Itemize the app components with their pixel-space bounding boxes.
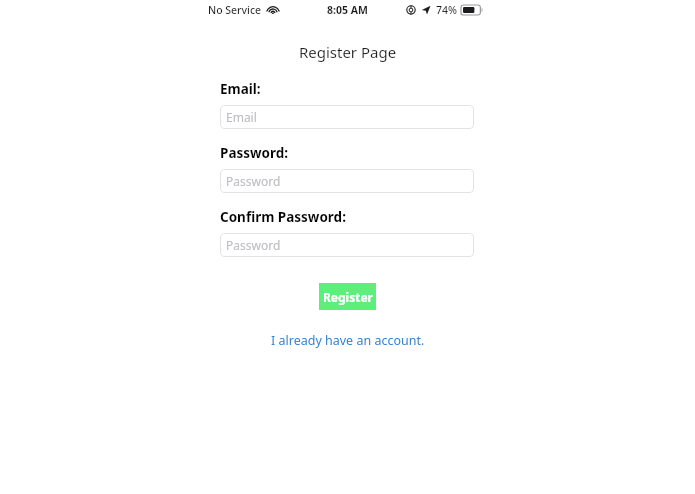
staticText: Password <box>226 237 281 253</box>
staticText: Email <box>226 109 257 125</box>
staticText: No Service <box>208 3 262 17</box>
staticText: Email: <box>220 80 261 98</box>
staticText: Register Page <box>0 42 695 62</box>
button[interactable]: Email <box>220 105 474 129</box>
staticText: Password: <box>220 144 289 162</box>
button[interactable]: Password <box>220 233 474 257</box>
staticText: Password <box>226 173 281 189</box>
button[interactable]: Register <box>319 283 376 310</box>
staticText: 8:05 AM <box>327 3 368 17</box>
staticText: Register <box>323 289 373 305</box>
button[interactable]: Password <box>220 169 474 193</box>
staticText: Confirm Password: <box>220 208 346 226</box>
staticText: I already have an account. <box>271 332 425 349</box>
staticText: 74% <box>436 3 457 17</box>
button[interactable]: I already have an account. <box>267 330 429 351</box>
